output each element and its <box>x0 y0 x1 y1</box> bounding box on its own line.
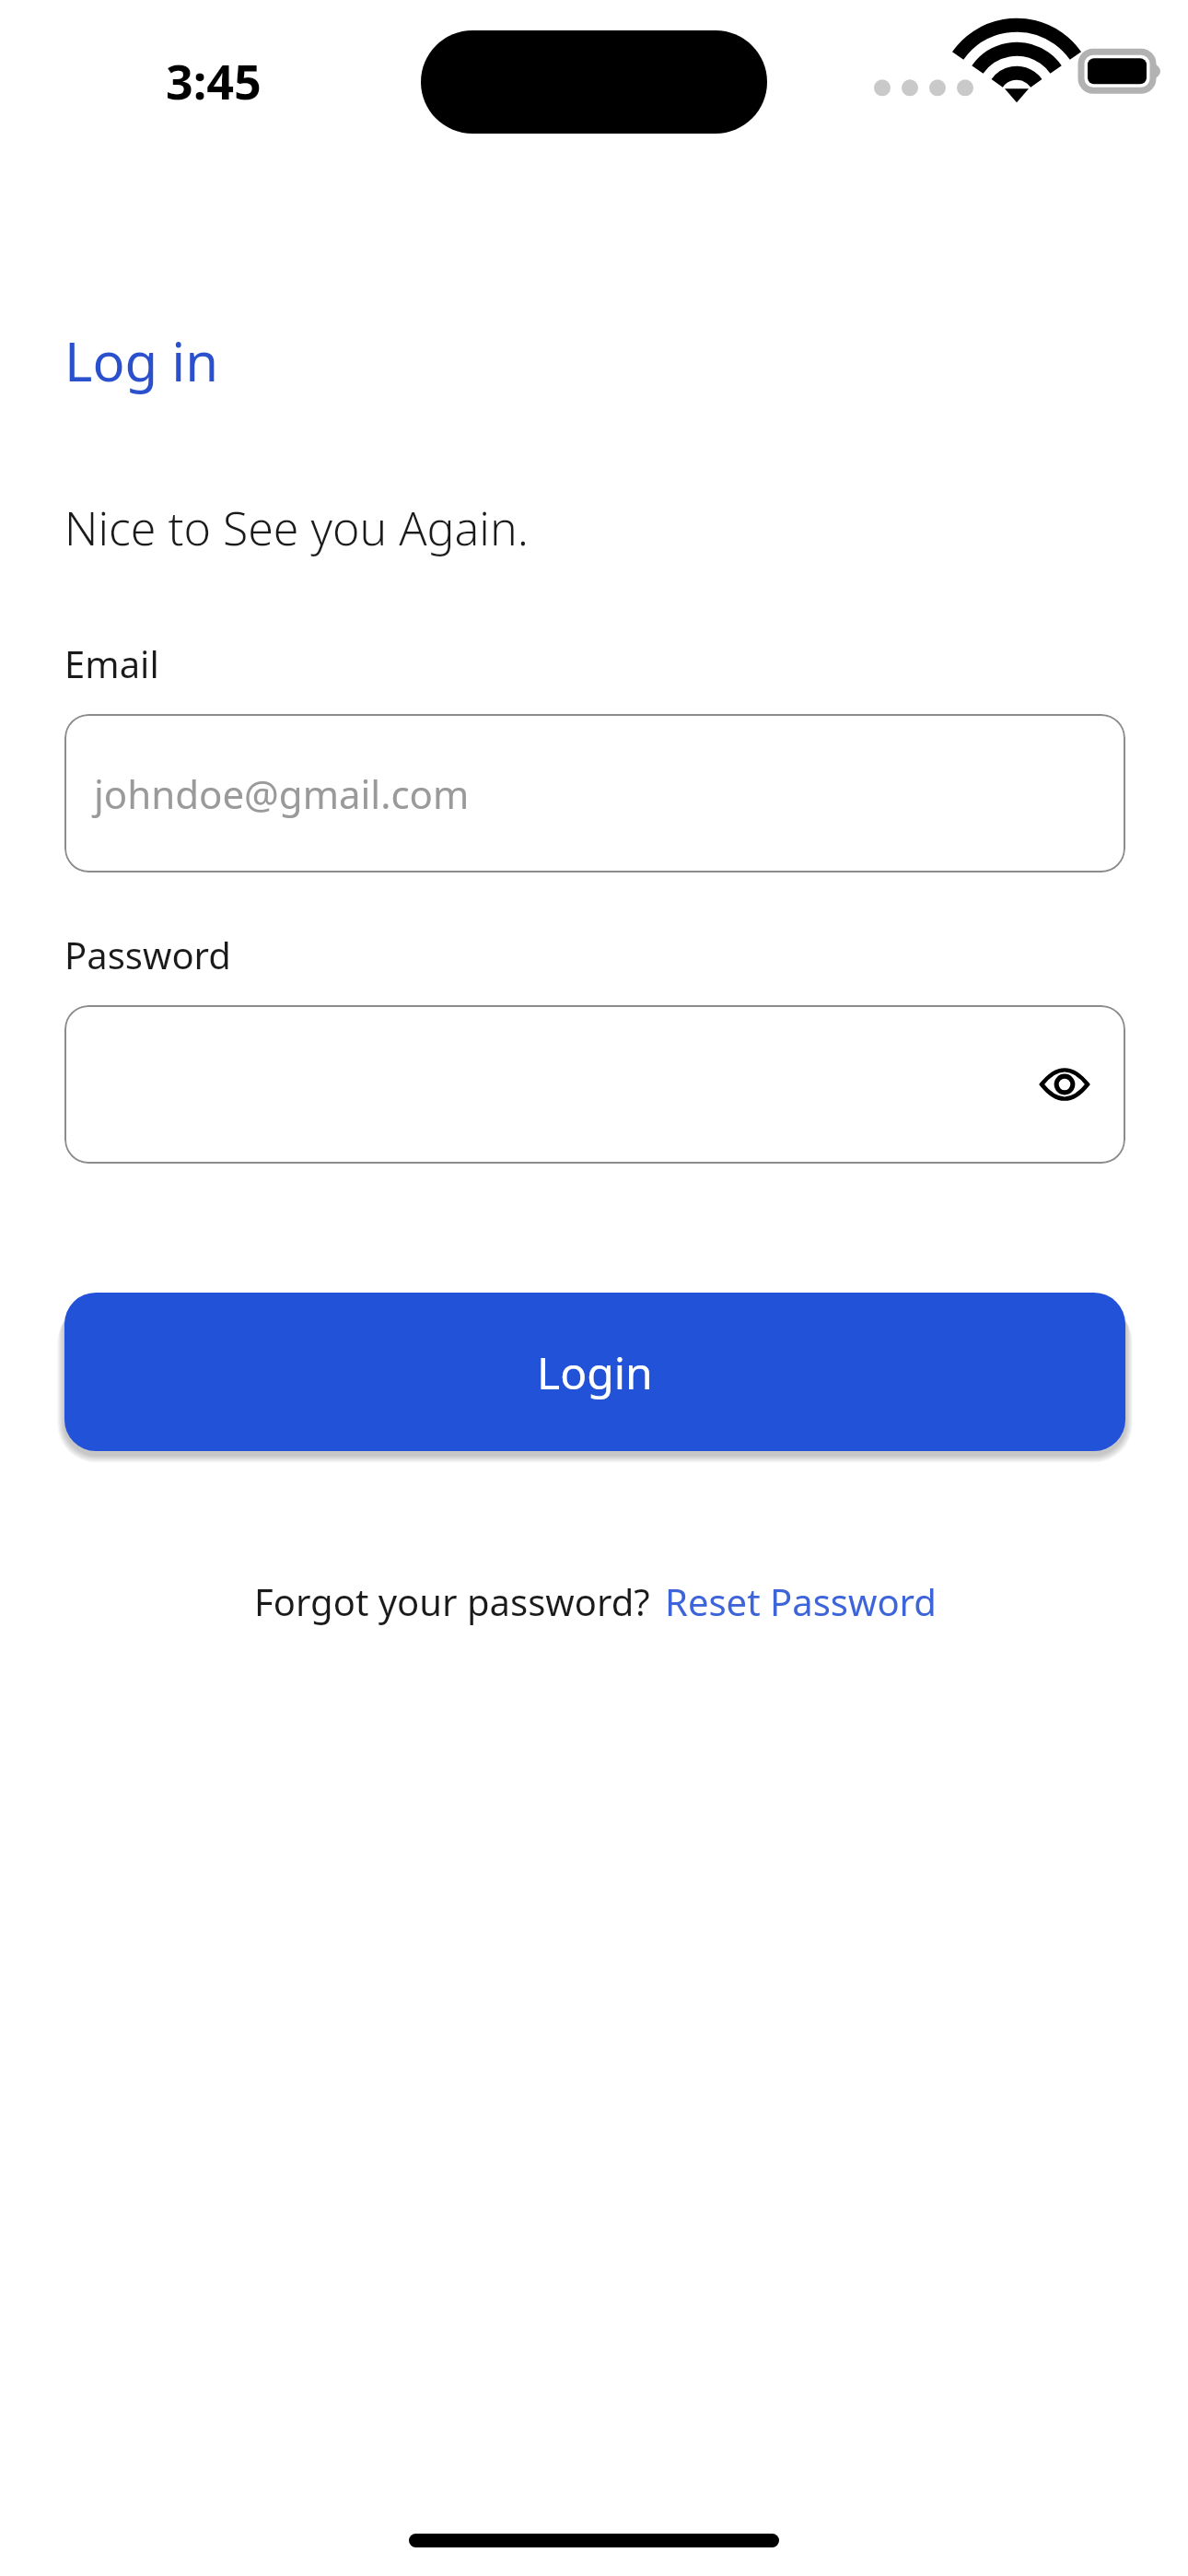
button[interactable]: Reset Password <box>665 1576 937 1626</box>
button[interactable]: Show password <box>1035 1055 1094 1114</box>
staticText: johndoe@gmail.com <box>94 767 470 820</box>
staticText: Email <box>64 638 159 688</box>
staticText: Login <box>537 1342 653 1402</box>
staticText: Log in <box>64 324 219 397</box>
staticText: 3:45 <box>166 48 262 113</box>
button[interactable]: johndoe@gmail.com <box>64 714 1125 872</box>
button[interactable]: Show password <box>64 1005 1125 1164</box>
staticText: Reset Password <box>665 1576 937 1626</box>
button[interactable]: Login <box>64 1293 1125 1451</box>
staticText: Password <box>64 930 231 979</box>
staticText: Forgot your password? <box>254 1576 650 1626</box>
staticText: Nice to See you Again. <box>64 497 529 559</box>
